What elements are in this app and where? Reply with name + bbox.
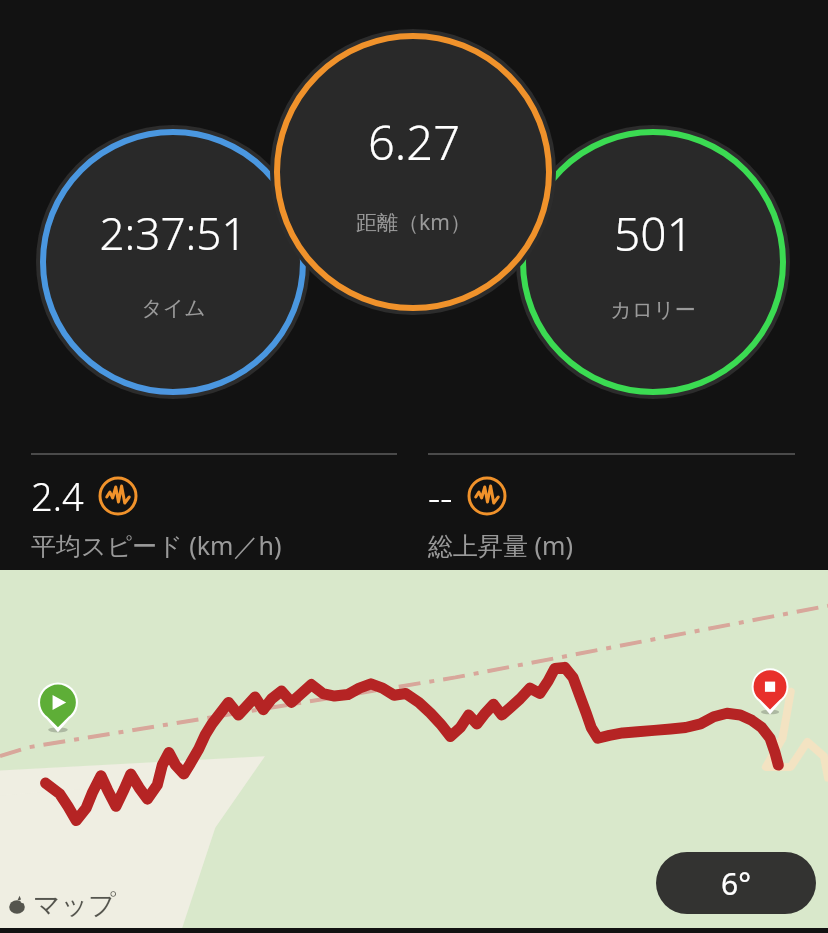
staticText: タイム (141, 295, 206, 321)
staticText: 距離（km） (356, 208, 471, 237)
staticText: -- (428, 470, 453, 522)
staticText: 2.4 (31, 470, 84, 522)
staticText: カロリー (610, 297, 696, 323)
staticText: 6° (721, 863, 751, 904)
staticText: 平均スピード (km／h) (31, 528, 282, 562)
button[interactable]: 6° (656, 852, 816, 914)
staticText: 総上昇量 (m) (428, 528, 573, 562)
staticText: マップ (33, 888, 116, 922)
button[interactable]: Total ascent (428, 470, 798, 562)
button[interactable]: Average speed 2.4 kilometres per hour (31, 470, 401, 562)
staticText: 6.27 (368, 110, 460, 174)
button[interactable]: Calories 501 (513, 122, 793, 402)
button[interactable]: Route map (0, 570, 828, 928)
button[interactable]: Distance 6.27 km (267, 26, 559, 318)
staticText: 501 (614, 202, 693, 265)
button[interactable]: Time 2:37:51 (33, 122, 313, 402)
staticText: 2:37:51 (99, 203, 247, 263)
